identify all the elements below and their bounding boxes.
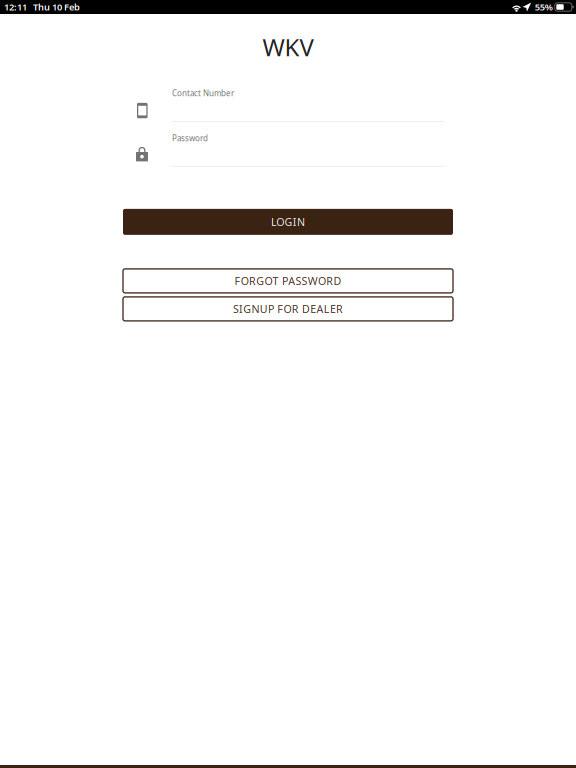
- staticText: SIGNUP FOR DEALER: [233, 302, 343, 316]
- button[interactable]: SIGNUP FOR DEALER: [123, 297, 453, 321]
- staticText: FORGOT PASSWORD: [235, 274, 341, 288]
- staticText: Thu 10 Feb: [33, 1, 80, 13]
- button[interactable]: Contact Number: [128, 86, 448, 122]
- staticText: 12:11: [4, 1, 27, 13]
- staticText: 55%: [535, 1, 553, 13]
- staticText: WKV: [262, 31, 313, 63]
- staticText: Password: [172, 133, 208, 143]
- button[interactable]: FORGOT PASSWORD: [123, 269, 453, 293]
- button[interactable]: Password: [128, 131, 448, 167]
- button[interactable]: LOGIN: [123, 209, 453, 235]
- staticText: LOGIN: [271, 215, 305, 229]
- staticText: Contact Number: [172, 88, 234, 98]
